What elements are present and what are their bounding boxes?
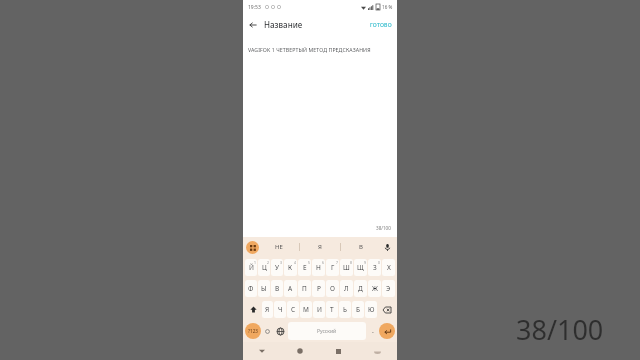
button[interactable]: Удалить [378,301,395,318]
staticText: 5 [308,260,310,265]
staticText: Ш [343,263,350,272]
button[interactable]: И [313,301,325,318]
button[interactable]: Г [326,259,339,276]
button[interactable]: Клавиатура [358,342,397,360]
staticText: 6 [322,260,324,265]
button[interactable]: К [284,259,297,276]
button[interactable]: . [368,322,377,340]
button[interactable]: ГОТОВО [368,19,394,30]
staticText: Ч [278,305,283,314]
button[interactable]: Ю [365,301,377,318]
staticText: Х [387,263,391,272]
staticText: 16 % [382,4,393,10]
staticText: Ф [248,284,254,293]
button[interactable]: Меню клавиатуры [246,241,259,254]
button[interactable]: Р [312,280,325,297]
staticText: Ы [261,284,267,293]
button[interactable]: Недавние [319,342,358,360]
button[interactable]: Скрыть клавиатуру [243,342,281,360]
button[interactable]: Shift [245,301,261,318]
button[interactable]: Н [312,259,325,276]
staticText: А [288,284,293,293]
button[interactable]: Щ [354,259,367,276]
button[interactable]: Ь [339,301,351,318]
staticText: У [275,263,280,272]
button[interactable]: Й [245,259,257,276]
button[interactable]: М [300,301,312,318]
staticText: Э [386,284,391,293]
staticText: Щ [357,263,364,272]
button[interactable]: Ш [340,259,353,276]
staticText: М [303,305,309,314]
staticText: Й [249,263,254,272]
button[interactable]: Л [340,280,353,297]
staticText: 3 [280,260,282,265]
staticText: 8 [350,260,352,265]
button[interactable]: Ф [245,280,257,297]
staticText: ГОТОВО [370,21,392,28]
staticText: П [302,284,307,293]
staticText: Русский [317,328,337,335]
staticText: 38/100 [376,225,391,231]
staticText: Я [318,243,322,251]
staticText: Г [331,263,335,272]
button[interactable]: Б [352,301,364,318]
staticText: Ю [368,305,375,314]
staticText: 0 [378,260,380,265]
button[interactable]: Ч [274,301,286,318]
button[interactable]: Ц [258,259,270,276]
button[interactable]: Э [382,280,395,297]
staticText: Р [317,284,321,293]
staticText: Т [330,305,334,314]
staticText: Ж [372,284,378,293]
button[interactable]: В [271,280,283,297]
staticText: Ь [343,305,347,314]
staticText: 38/100 [516,311,604,348]
staticText: 9 [364,260,366,265]
button[interactable]: А [284,280,297,297]
staticText: Д [358,284,363,293]
staticText: VAGIFOK 1 ЧЕТВЕРТЫЙ МЕТОД ПРЕДСКАЗАНИЯ [248,46,371,53]
staticText: 1 [254,260,256,265]
button[interactable]: Ж [368,280,381,297]
button[interactable]: Главный экран [281,342,319,360]
button[interactable]: В [341,237,381,257]
staticText: З [373,263,377,272]
staticText: С [291,305,296,314]
staticText: И [317,305,322,314]
staticText: Б [356,305,360,314]
staticText: Название [264,19,303,30]
staticText: 2 [267,260,269,265]
button[interactable]: Ы [258,280,270,297]
button[interactable]: Я [300,237,340,257]
button[interactable]: Ввод [379,323,395,339]
staticText: О [330,284,335,293]
staticText: 4 [294,260,296,265]
button[interactable]: У [271,259,283,276]
button[interactable]: Русский [288,322,366,340]
staticText: НЕ [275,243,283,251]
button[interactable]: Голосовой ввод [381,241,394,254]
button[interactable]: Т [326,301,338,318]
staticText: ?123 [248,328,258,334]
button[interactable]: ?123 [245,323,261,339]
button[interactable]: Сменить язык [274,322,286,340]
button[interactable]: С [287,301,299,318]
button[interactable]: Д [354,280,367,297]
staticText: В [359,243,363,251]
staticText: К [288,263,293,272]
button[interactable]: Назад [245,17,261,33]
staticText: Е [303,263,307,272]
button[interactable]: Х [382,259,395,276]
button[interactable]: Е [298,259,311,276]
staticText: 7 [336,260,338,265]
staticText: Л [344,284,349,293]
button[interactable]: З [368,259,381,276]
button[interactable]: П [298,280,311,297]
button[interactable]: О [326,280,339,297]
button[interactable]: НЕ [259,237,299,257]
staticText: В [275,284,280,293]
button[interactable]: Я [262,301,273,318]
button[interactable]: Эмодзи [263,322,272,340]
staticText: . [372,326,374,336]
